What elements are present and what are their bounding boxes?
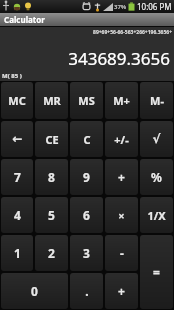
button[interactable]: 4 bbox=[1, 197, 33, 233]
staticText: - bbox=[120, 245, 124, 261]
staticText: × bbox=[118, 208, 125, 223]
staticText: Calculator bbox=[4, 14, 45, 25]
button[interactable]: MS bbox=[70, 82, 103, 119]
staticText: % bbox=[151, 169, 162, 185]
staticText: 4 bbox=[14, 207, 21, 223]
staticText: 1/X bbox=[147, 208, 166, 223]
button[interactable]: 1/X bbox=[140, 197, 173, 233]
staticText: 10:06 PM bbox=[137, 1, 172, 12]
staticText: MC bbox=[8, 93, 26, 108]
staticText: CE bbox=[45, 132, 59, 147]
button[interactable]: 5 bbox=[35, 197, 68, 233]
staticText: + bbox=[118, 283, 125, 299]
staticText: ← bbox=[12, 132, 23, 146]
staticText: 37% bbox=[114, 3, 127, 11]
button[interactable]: 3 bbox=[70, 235, 103, 271]
button[interactable]: 9 bbox=[70, 159, 103, 195]
button[interactable]: C bbox=[70, 121, 103, 157]
staticText: 1 bbox=[14, 245, 21, 261]
staticText: 2 bbox=[48, 245, 55, 261]
button[interactable]: MC bbox=[1, 82, 33, 119]
button[interactable]: . bbox=[70, 273, 103, 309]
staticText: 343689.3656 bbox=[68, 47, 170, 70]
button[interactable]: Backspace bbox=[1, 121, 33, 157]
button[interactable]: 7 bbox=[1, 159, 33, 195]
button[interactable]: 1 bbox=[1, 235, 33, 271]
button[interactable]: Square root bbox=[140, 121, 173, 157]
staticText: M+ bbox=[113, 93, 130, 108]
button[interactable]: - bbox=[105, 235, 138, 271]
staticText: . bbox=[85, 283, 89, 299]
staticText: M( 85 ) bbox=[2, 72, 22, 80]
button[interactable]: +/- bbox=[105, 121, 138, 157]
button[interactable]: M+ bbox=[105, 82, 138, 119]
staticText: 5 bbox=[48, 207, 55, 223]
staticText: MR bbox=[43, 93, 61, 108]
button[interactable]: M- bbox=[140, 82, 173, 119]
button[interactable]: CE bbox=[35, 121, 68, 157]
button[interactable]: 0 bbox=[1, 273, 68, 309]
staticText: = bbox=[153, 264, 160, 280]
staticText: +/- bbox=[114, 132, 129, 147]
button[interactable]: 2 bbox=[35, 235, 68, 271]
button[interactable]: 6 bbox=[70, 197, 103, 233]
button[interactable]: MR bbox=[35, 82, 68, 119]
staticText: 3 bbox=[83, 245, 90, 261]
staticText: + bbox=[118, 169, 125, 185]
staticText: M- bbox=[150, 93, 164, 108]
staticText: 6 bbox=[83, 207, 90, 223]
staticText: 0 bbox=[31, 283, 38, 299]
staticText: √ bbox=[152, 132, 161, 146]
button[interactable]: × bbox=[105, 197, 138, 233]
staticText: MS bbox=[78, 93, 95, 108]
staticText: 7 bbox=[14, 169, 21, 185]
staticText: 9 bbox=[83, 169, 90, 185]
staticText: 89+69+56-66-563+266+196.3656+ bbox=[93, 29, 172, 36]
button[interactable]: + bbox=[105, 273, 138, 309]
staticText: 8 bbox=[48, 169, 55, 185]
staticText: C bbox=[83, 132, 91, 147]
button[interactable]: % bbox=[140, 159, 173, 195]
button[interactable]: + bbox=[105, 159, 138, 195]
button[interactable]: = bbox=[140, 235, 173, 309]
button[interactable]: 8 bbox=[35, 159, 68, 195]
